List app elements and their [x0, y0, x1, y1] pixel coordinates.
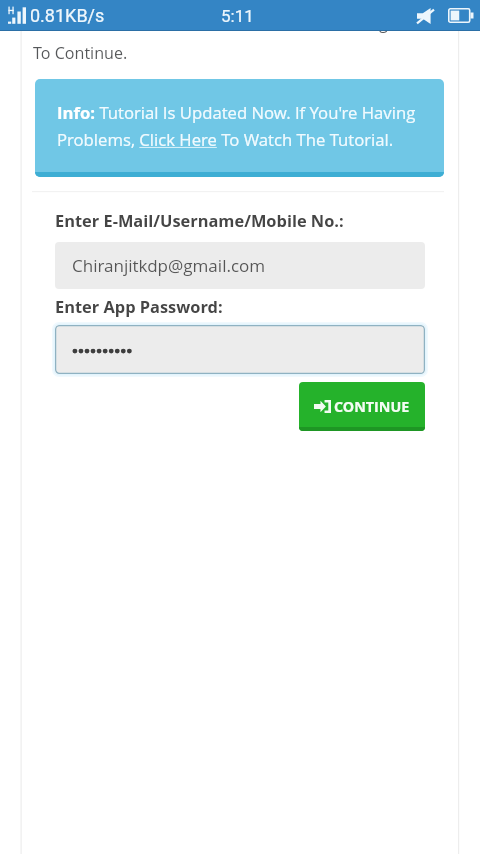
staticText: CONTINUE	[334, 397, 410, 416]
button[interactable]	[52, 322, 428, 377]
other: Mobile signal	[3, 3, 25, 24]
button[interactable]: CONTINUE	[299, 382, 425, 431]
button[interactable]: Chiranjitkdp@gmail.com	[55, 242, 425, 289]
staticText: 0.81KB/s	[30, 5, 105, 26]
staticText: Info: Tutorial Is Updated Now. If You're…	[57, 101, 423, 151]
other: Sound muted	[417, 8, 434, 24]
other: Battery	[448, 8, 474, 23]
staticText: Enter App Password:	[55, 295, 223, 317]
staticText: To Continue.	[33, 42, 128, 64]
staticText: Enter E-Mail/Username/Mobile No.:	[55, 209, 344, 231]
staticText: 5:11	[221, 6, 254, 26]
staticText: Chiranjitkdp@gmail.com	[72, 254, 266, 277]
staticText: Please Enter The Details In All The Boxe…	[33, 12, 402, 34]
button[interactable]: Info: Tutorial Is Updated Now. If You're…	[35, 79, 444, 177]
